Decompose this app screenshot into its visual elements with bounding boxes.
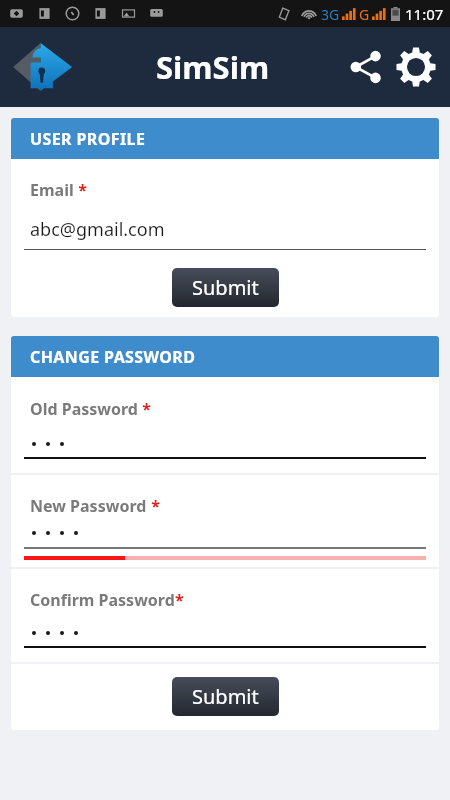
button[interactable]: Share [342,43,390,91]
staticText: * [138,398,151,420]
staticText: SimSim [156,46,270,88]
staticText: 11:07 [405,4,444,24]
staticText: * [74,179,87,201]
staticText: G [359,5,370,24]
staticText: CHANGE PASSWORD [30,346,196,368]
button[interactable]: Settings [390,41,442,93]
other: App logo [12,39,74,95]
button[interactable]: Submit [172,268,279,307]
staticText: Email [30,179,74,201]
staticText: * [175,589,184,611]
button[interactable]: Submit [172,677,279,716]
staticText: Submit [192,683,259,710]
staticText: New Password [30,495,147,517]
staticText: abc@gmail.com [30,217,165,242]
staticText: USER PROFILE [30,128,146,150]
staticText: Confirm Password [30,589,175,611]
staticText: * [147,495,160,517]
staticText: Old Password [30,398,138,420]
staticText: Submit [192,274,259,301]
staticText: 3G [321,5,340,24]
